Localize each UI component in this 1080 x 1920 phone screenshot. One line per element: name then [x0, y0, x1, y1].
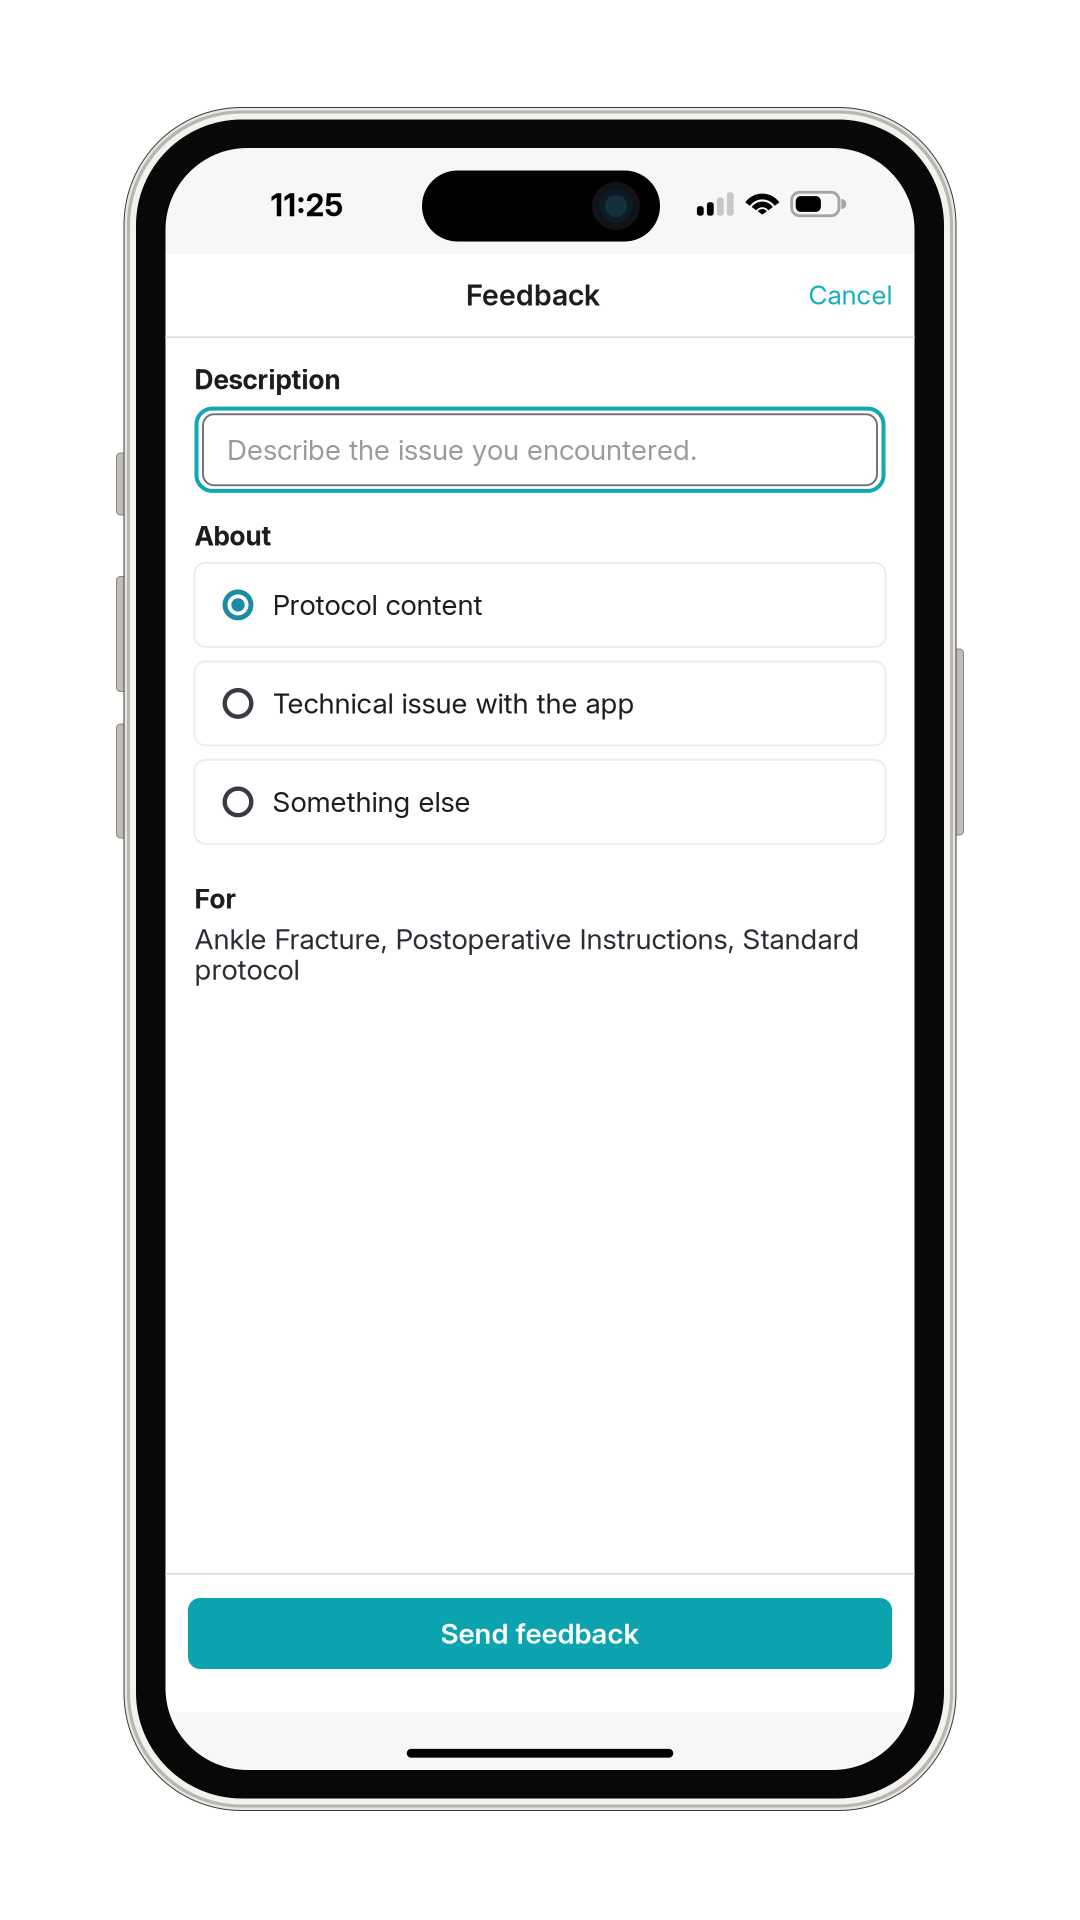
staticText: Cancel	[808, 279, 892, 311]
button[interactable]: Send feedback	[188, 1598, 892, 1669]
button[interactable]: Cancel	[786, 265, 914, 325]
staticText: Feedback	[466, 277, 600, 312]
staticText: Description	[194, 364, 340, 395]
button[interactable]: Something else	[194, 760, 885, 844]
staticText: Technical issue with the app	[272, 686, 634, 720]
staticText: 11:25	[270, 186, 343, 223]
staticText: For	[194, 883, 235, 915]
staticText: Send feedback	[440, 1617, 639, 1650]
staticText: Describe the issue you encountered.	[227, 433, 697, 467]
staticText: Protocol content	[272, 588, 482, 622]
button[interactable]: Protocol content	[194, 563, 885, 647]
staticText: Ankle Fracture, Postoperative Instructio…	[194, 924, 859, 985]
button[interactable]: Technical issue with the app	[194, 661, 885, 745]
staticText: Something else	[272, 785, 470, 819]
staticText: About	[194, 520, 271, 552]
button[interactable]: Describe the issue you encountered.	[194, 407, 885, 493]
